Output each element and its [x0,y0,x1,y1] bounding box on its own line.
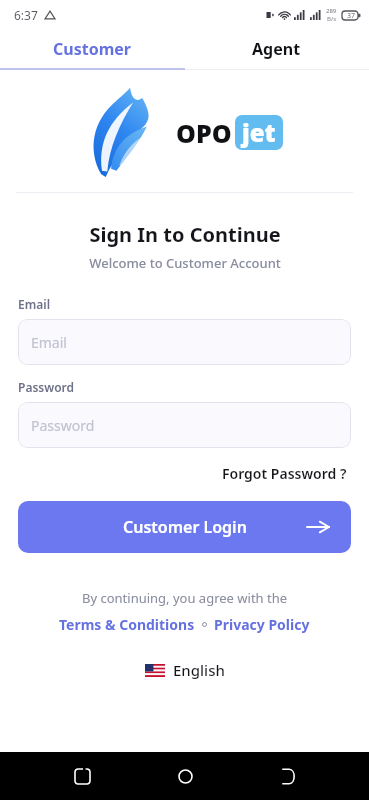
staticText: Email [31,333,67,352]
staticText: Forgot Password ? [222,464,347,483]
button[interactable]: Home [164,755,206,797]
staticText: Customer [53,38,131,60]
staticText: 6:37 [14,7,38,23]
staticText: Sign In to Continue [89,221,281,248]
staticText: English [173,660,225,680]
button[interactable]: Privacy Policy [214,615,310,634]
staticText: Privacy Policy [214,615,310,634]
staticText: 37 [347,11,356,21]
staticText: By continuing, you agree with the [82,589,288,607]
button[interactable]: Terms & Conditions [59,615,195,634]
button[interactable]: Customer Login [18,501,351,553]
staticText: Password [18,379,75,395]
staticText: 289 [326,7,337,15]
staticText: jet [242,116,276,149]
staticText: B/s [327,15,337,23]
button[interactable]: Email [18,319,351,365]
button[interactable]: Back [266,755,308,797]
staticText: OPO [176,116,232,150]
button[interactable]: Customer [0,30,184,68]
button[interactable]: Agent [184,30,369,68]
button[interactable]: Password [18,402,351,448]
button[interactable]: Recent apps [61,755,103,797]
staticText: Customer Login [123,516,247,538]
staticText: Terms & Conditions [59,615,195,634]
staticText: Email [18,296,51,312]
staticText: Agent [252,38,301,60]
button[interactable]: English [141,656,229,684]
staticText: Welcome to Customer Account [89,254,281,272]
button[interactable]: Forgot Password ? [218,460,351,487]
staticText: Password [31,416,95,435]
